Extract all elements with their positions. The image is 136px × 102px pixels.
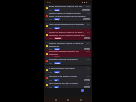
staticText: Later [85,86,89,88]
staticText: CRITICAL latency spike in us-east-1 dete… [49,31,86,36]
button[interactable]: Later [84,48,90,50]
staticText: app [49,86,53,88]
button[interactable]: Weekly analytics report is ready to down… [45,41,91,50]
staticText: Mute [85,37,89,39]
button[interactable]: Ignore [83,18,90,20]
staticText: app [49,18,53,20]
staticText: Pay [55,86,58,88]
button[interactable]: Resolve [54,37,62,39]
button[interactable]: Build finished for main in 2m 14s [45,5,91,11]
button[interactable]: Pay [54,86,59,88]
button[interactable]: Open [54,48,60,50]
staticText: 18m [86,42,90,44]
button[interactable]: 3 new followers this week [45,66,91,74]
staticText: app [49,48,53,50]
staticText: Retry [55,18,59,20]
staticText: app [49,27,53,29]
staticText: 9:41 [47,1,52,4]
staticText: app [49,37,53,39]
staticText: app [49,79,53,81]
staticText: 41m [86,58,90,60]
staticText: Payment gateway timeout on checkout [49,50,85,55]
staticText: 5m [87,23,90,25]
staticText: app [49,62,53,64]
staticText: 3 new followers this week [49,67,86,70]
staticText: 25m [86,50,90,52]
staticText: 3h [87,82,90,84]
staticText: Resolve [55,37,61,39]
staticText: 2m [87,12,90,14]
staticText: Fix [55,79,58,81]
button[interactable]: Compose [81,89,84,92]
staticText: Database backup completed [49,58,85,61]
button[interactable]: New review awaiting your approval [45,22,91,29]
button[interactable]: Dismiss [82,9,90,11]
button[interactable]: Open [54,9,60,11]
button[interactable]: View [54,71,60,73]
button[interactable]: View [54,27,60,29]
staticText: View [55,27,59,29]
button[interactable]: Mute [84,37,90,39]
staticText: View [55,71,59,73]
button[interactable]: Deploy failed on staging cluster node 14… [45,11,91,21]
button[interactable]: Retry [54,18,60,20]
button[interactable]: Security scan found 2 issues [45,74,91,81]
staticText: Later [85,48,89,50]
button[interactable]: Retry [54,56,60,57]
staticText: 2h [87,75,90,77]
staticText: Details [55,62,60,64]
button[interactable]: Skip [84,79,90,81]
button[interactable]: Details [54,62,61,64]
button[interactable]: Later [84,86,90,88]
staticText: Dismiss [83,9,89,11]
staticText: Build finished for main in 2m 14s [49,5,85,8]
staticText: Your invoice for May is ready [49,82,86,85]
staticText: Skip [85,79,89,81]
staticText: Open [55,48,59,50]
staticText: app [49,71,53,73]
staticText: Deploy failed on staging cluster node 14… [49,12,86,17]
staticText: Ignore [84,18,89,20]
button[interactable]: Fix [54,79,59,81]
staticText: now [86,5,90,7]
staticText: Security scan found 2 issues [49,75,86,78]
staticText: 1h [87,67,90,69]
button[interactable]: Payment gateway timeout on checkout [45,50,91,57]
staticText: Weekly analytics report is ready to down… [49,42,85,47]
staticText: app [49,9,53,11]
staticText: New review awaiting your approval [49,23,86,26]
staticText: Open [55,9,59,11]
button[interactable]: CRITICAL latency spike in us-east-1 dete… [45,29,91,40]
button[interactable]: Your invoice for May is ready [45,81,91,88]
staticText: 8m [87,31,90,33]
button[interactable]: Database backup completed [45,57,91,65]
